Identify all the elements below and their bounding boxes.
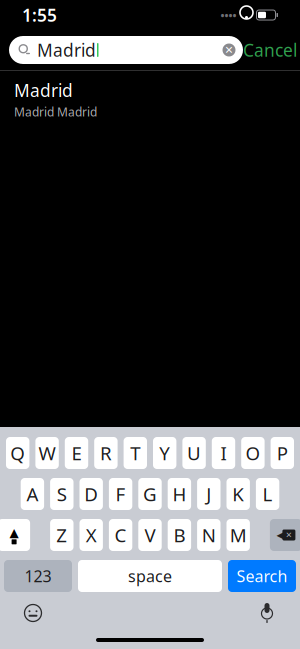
staticText: D <box>84 482 98 506</box>
button[interactable]: Madrid <box>0 71 300 128</box>
staticText: M <box>230 523 247 547</box>
button[interactable]: Shift <box>0 519 30 551</box>
button[interactable]: O <box>241 437 265 469</box>
button[interactable]: R <box>94 437 118 469</box>
staticText: Madrid <box>14 79 73 102</box>
button[interactable]: space <box>78 560 222 592</box>
staticText: C <box>115 523 127 547</box>
staticText: ✕ <box>224 44 233 56</box>
staticText: ◀ <box>276 530 283 540</box>
staticText: S <box>57 482 67 506</box>
staticText: Z <box>56 523 67 547</box>
button[interactable]: L <box>256 478 279 510</box>
button[interactable]: E <box>65 437 88 469</box>
staticText: H <box>172 482 186 506</box>
button[interactable]: D <box>79 478 103 510</box>
staticText: W <box>39 441 56 465</box>
staticText: V <box>144 523 155 547</box>
button[interactable]: B <box>168 519 191 551</box>
button[interactable]: H <box>168 478 191 510</box>
button[interactable]: F <box>109 478 132 510</box>
staticText: E <box>71 441 81 465</box>
button[interactable]: Emoji <box>16 598 50 628</box>
staticText: F <box>116 482 126 506</box>
staticText: N <box>202 523 216 547</box>
staticText: Madrid Madrid <box>14 104 97 120</box>
button[interactable]: Dictation <box>250 598 284 628</box>
staticText: X <box>86 523 97 547</box>
staticText: A <box>26 482 38 506</box>
staticText: 123 <box>24 565 51 587</box>
button[interactable]: S <box>50 478 73 510</box>
button[interactable]: W <box>35 437 59 469</box>
staticText: G <box>143 482 157 506</box>
staticText: ▲ <box>10 526 19 539</box>
staticText: U <box>187 441 201 465</box>
staticText: Cancel <box>243 38 297 61</box>
button[interactable]: Search <box>228 560 296 592</box>
button[interactable]: J <box>197 478 220 510</box>
button[interactable]: Q <box>6 437 29 469</box>
button[interactable]: N <box>197 519 220 551</box>
staticText: B <box>173 523 185 547</box>
staticText: Search <box>236 565 287 587</box>
staticText: Madrid <box>37 38 96 61</box>
button[interactable]: Z <box>50 519 73 551</box>
staticText: ✕ <box>285 530 292 540</box>
button[interactable]: C <box>109 519 132 551</box>
button[interactable]: Cancel <box>243 35 297 65</box>
button[interactable]: P <box>271 437 294 469</box>
staticText: P <box>277 441 288 465</box>
staticText: I <box>220 441 226 465</box>
staticText: T <box>130 441 140 465</box>
button[interactable]: U <box>182 437 206 469</box>
button[interactable]: Clear text <box>217 38 241 62</box>
staticText: J <box>206 482 211 506</box>
staticText: •••• <box>220 8 236 22</box>
staticText: space <box>128 565 172 587</box>
button[interactable]: X <box>79 519 103 551</box>
staticText: L <box>263 482 273 506</box>
button[interactable]: T <box>124 437 147 469</box>
button[interactable]: Delete <box>270 519 300 551</box>
button[interactable]: A <box>21 478 44 510</box>
button[interactable]: K <box>226 478 250 510</box>
staticText: Q <box>10 441 25 465</box>
button[interactable]: G <box>138 478 162 510</box>
button[interactable]: 123 <box>4 560 72 592</box>
button[interactable]: V <box>138 519 162 551</box>
button[interactable]: I <box>212 437 235 469</box>
staticText: Y <box>159 441 170 465</box>
staticText: O <box>245 441 260 465</box>
button[interactable]: M <box>226 519 250 551</box>
staticText: 1:55 <box>22 3 57 26</box>
staticText: K <box>232 482 244 506</box>
button[interactable]: Y <box>153 437 176 469</box>
staticText: R <box>100 441 112 465</box>
